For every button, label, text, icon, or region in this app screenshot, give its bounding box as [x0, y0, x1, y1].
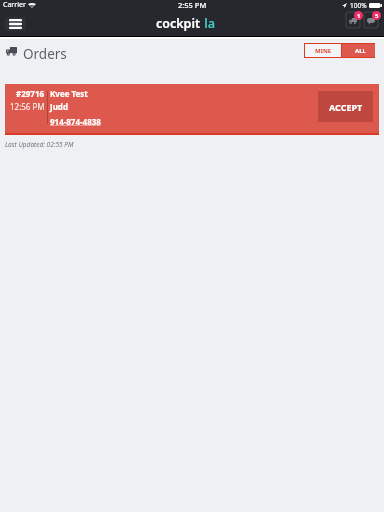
staticText: #29716 — [16, 88, 45, 99]
staticText: 1 — [357, 12, 361, 20]
staticText: Judd — [50, 101, 68, 112]
staticText: ACCEPT — [329, 101, 363, 113]
staticText: MINE — [315, 47, 332, 55]
staticText: la — [201, 15, 216, 32]
button[interactable]: 914-874-4838 — [50, 116, 101, 127]
button[interactable]: Deliveries — [346, 12, 360, 28]
staticText: ALL — [355, 47, 366, 55]
staticText: 100% — [350, 1, 367, 10]
staticText: 2:55 PM — [178, 0, 207, 10]
staticText: cockpit — [156, 15, 201, 32]
staticText: Carrier — [3, 0, 26, 10]
button[interactable]: #29716 — [5, 84, 379, 135]
staticText: Kvee Test — [50, 88, 88, 99]
button[interactable]: ACCEPT — [318, 91, 373, 122]
staticText: Orders — [23, 45, 67, 63]
staticText: 12:56 PM — [10, 101, 45, 112]
button[interactable]: Menu — [5, 17, 26, 31]
button[interactable]: Messages — [364, 12, 378, 28]
staticText: Last Updated: 02:55 PM — [5, 140, 74, 149]
button[interactable]: MINE — [305, 44, 341, 57]
button[interactable]: ALL — [342, 44, 375, 57]
staticText: 5 — [375, 12, 379, 20]
